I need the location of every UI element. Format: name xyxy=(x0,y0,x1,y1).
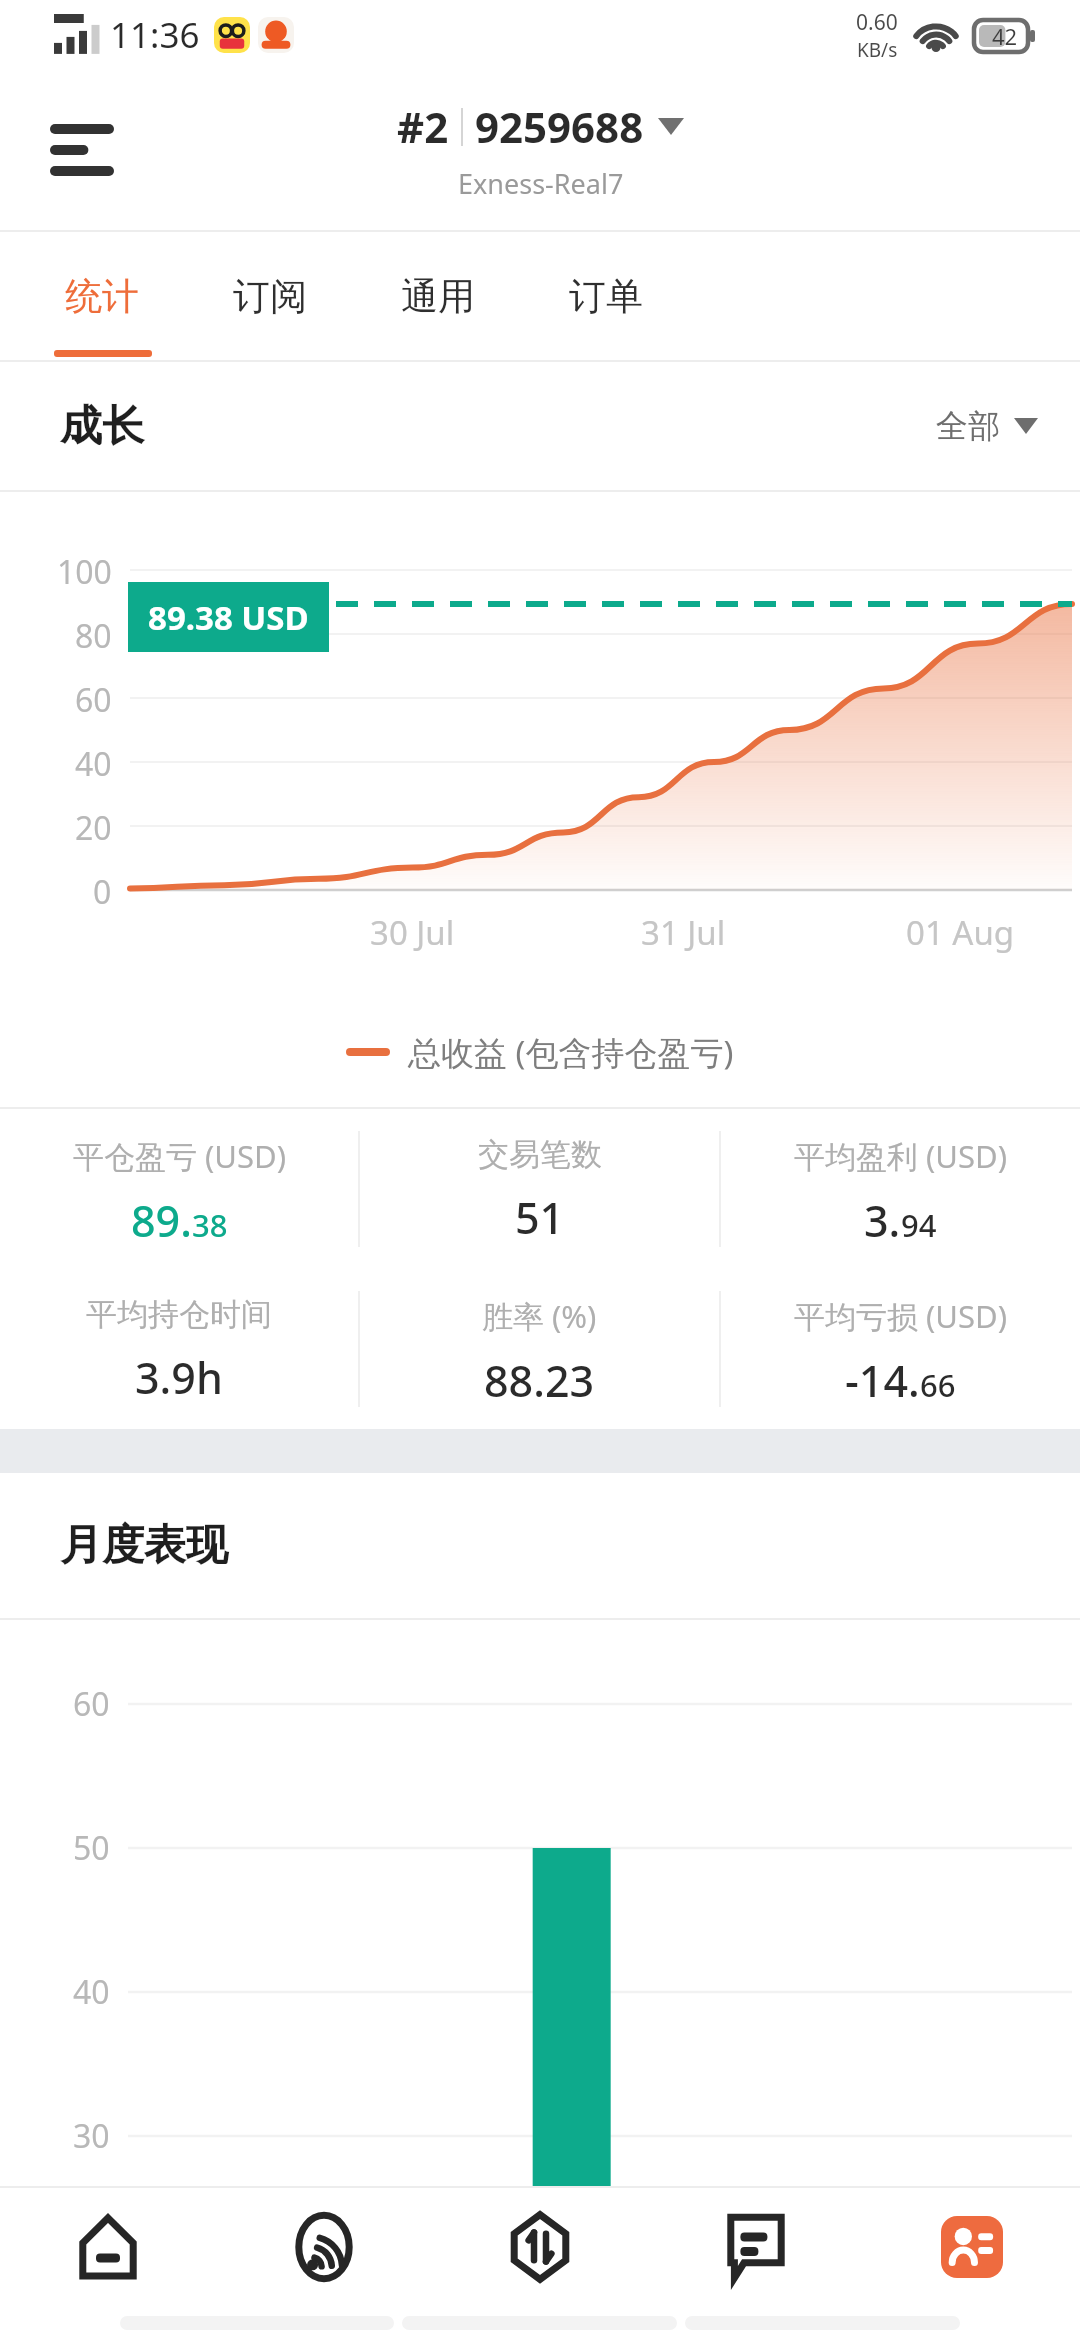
button[interactable]: #2 xyxy=(397,98,684,202)
button[interactable]: 订阅 xyxy=(214,232,326,360)
staticText: 42 xyxy=(992,21,1018,51)
staticText: 平均亏损 (USD) xyxy=(794,1295,1007,1337)
staticText: 50 xyxy=(73,1826,110,1870)
staticText: 88.23 xyxy=(484,1351,595,1410)
staticText: 交易笔数 xyxy=(478,1135,602,1174)
staticText: 11:36 xyxy=(110,11,200,59)
staticText: 胜率 (%) xyxy=(482,1295,597,1337)
staticText: 平均盈利 (USD) xyxy=(794,1135,1007,1177)
staticText: 51 xyxy=(515,1188,565,1247)
button[interactable]: 全部 xyxy=(936,406,1038,446)
staticText: 平均持仓时间 xyxy=(86,1295,272,1334)
staticText: KB/s xyxy=(857,37,898,63)
button[interactable]: Profile xyxy=(864,2188,1080,2306)
staticText: 统计 xyxy=(65,273,139,320)
staticText: 31 Jul xyxy=(641,910,726,955)
staticText: 通用 xyxy=(401,273,475,320)
button[interactable]: Messages xyxy=(648,2188,864,2306)
staticText: 订单 xyxy=(569,273,643,320)
staticText: #2 xyxy=(397,98,449,155)
button[interactable]: 统计 xyxy=(46,232,158,360)
staticText: 总收益 (包含持仓盈亏) xyxy=(408,1030,734,1075)
staticText: 100 xyxy=(57,550,112,594)
staticText: 0.60 xyxy=(856,8,898,37)
staticText: Exness-Real7 xyxy=(458,165,624,202)
button[interactable]: Trade xyxy=(432,2188,648,2306)
staticText: 40 xyxy=(75,742,112,786)
staticText: 0 xyxy=(93,870,112,914)
staticText: 66 xyxy=(920,1364,956,1406)
button[interactable]: 通用 xyxy=(382,232,494,360)
button[interactable]: Home xyxy=(0,2188,216,2306)
button[interactable]: Signals xyxy=(216,2188,432,2306)
button[interactable]: 订单 xyxy=(550,232,662,360)
staticText: 3. xyxy=(864,1191,901,1250)
staticText: 订阅 xyxy=(233,273,307,320)
staticText: 平仓盈亏 (USD) xyxy=(73,1135,286,1177)
staticText: 成长 xyxy=(60,400,144,453)
staticText: 94 xyxy=(901,1204,937,1246)
staticText: -14. xyxy=(845,1351,920,1410)
staticText: 60 xyxy=(75,678,112,722)
staticText: 80 xyxy=(75,614,112,658)
staticText: 20 xyxy=(75,806,112,850)
staticText: 月度表现 xyxy=(60,1519,228,1572)
staticText: 30 Jul xyxy=(370,910,455,955)
staticText: 89. xyxy=(131,1191,192,1250)
button[interactable]: Menu xyxy=(34,102,130,198)
staticText: 89.38 USD xyxy=(148,595,309,640)
staticText: 9259688 xyxy=(475,98,644,155)
staticText: 3.9h xyxy=(135,1348,223,1407)
staticText: 全部 xyxy=(936,406,1000,446)
staticText: 40 xyxy=(73,1970,110,2014)
staticText: 38 xyxy=(192,1204,228,1246)
staticText: 60 xyxy=(73,1682,110,1726)
staticText: 30 xyxy=(73,2114,110,2158)
staticText: 01 Aug xyxy=(906,910,1015,955)
